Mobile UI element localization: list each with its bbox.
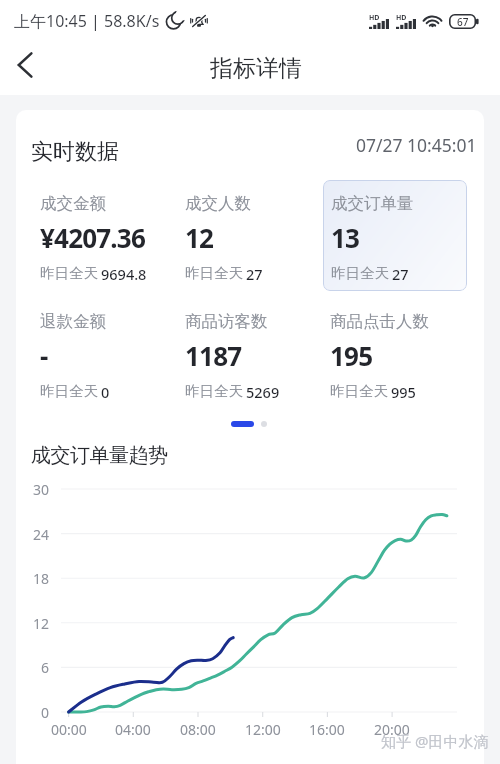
staticText: 12:00 xyxy=(245,720,281,739)
staticText: 成交人数 xyxy=(185,193,251,214)
staticText: 知乎 @田中水滴 xyxy=(381,731,489,751)
staticText: 昨日全天 xyxy=(185,264,243,282)
staticText: 指标详情 xyxy=(210,54,302,83)
button[interactable]: 返回 xyxy=(1,41,49,89)
staticText: 08:00 xyxy=(180,720,216,739)
button[interactable]: 成交订单量 xyxy=(323,180,467,291)
button[interactable]: 第一页 xyxy=(231,421,254,427)
staticText: 成交订单量 xyxy=(331,193,414,214)
staticText: HD xyxy=(396,13,407,23)
staticText: 昨日全天 xyxy=(40,382,98,400)
staticText: 商品访客数 xyxy=(185,311,268,332)
staticText: 07/27 10:45:01 xyxy=(356,133,477,157)
staticText: 0 xyxy=(101,382,110,402)
staticText: 昨日全天 xyxy=(40,264,98,282)
staticText: 18 xyxy=(33,569,50,588)
staticText: 商品点击人数 xyxy=(330,311,429,332)
staticText: 67 xyxy=(457,15,469,29)
staticText: 0 xyxy=(41,703,50,722)
staticText: 成交金额 xyxy=(40,193,106,214)
staticText: 5269 xyxy=(246,382,280,402)
staticText: 995 xyxy=(391,382,416,402)
staticText: 20:00 xyxy=(374,720,410,739)
staticText: - xyxy=(40,338,48,373)
staticText: 实时数据 xyxy=(31,138,119,166)
staticText: 9694.8 xyxy=(101,264,147,284)
staticText: 6 xyxy=(41,658,50,677)
staticText: 04:00 xyxy=(115,720,151,739)
staticText: 30 xyxy=(33,480,50,499)
staticText: 13 xyxy=(331,220,360,255)
button[interactable]: 成交金额 xyxy=(40,193,175,284)
button[interactable]: 第二页 xyxy=(261,421,267,427)
button[interactable]: 成交人数 xyxy=(185,193,320,284)
staticText: HD xyxy=(369,13,380,23)
staticText: 退款金额 xyxy=(40,311,106,332)
staticText: 27 xyxy=(246,264,263,284)
staticText: 12 xyxy=(33,614,50,633)
button[interactable]: 商品访客数 xyxy=(185,311,320,402)
staticText: 12 xyxy=(185,220,214,255)
button[interactable]: 退款金额 xyxy=(40,311,175,402)
button[interactable]: 商品点击人数 xyxy=(330,311,465,402)
staticText: 00:00 xyxy=(51,720,87,739)
staticText: ¥4207.36 xyxy=(40,220,146,255)
staticText: 24 xyxy=(33,525,50,544)
staticText: 1187 xyxy=(185,338,242,373)
staticText: 16:00 xyxy=(309,720,345,739)
staticText: 195 xyxy=(330,338,373,373)
staticText: 昨日全天 xyxy=(331,264,389,282)
staticText: 27 xyxy=(392,264,409,284)
staticText: 昨日全天 xyxy=(185,382,243,400)
staticText: 昨日全天 xyxy=(330,382,388,400)
staticText: 成交订单量趋势 xyxy=(31,443,168,468)
staticText: 上午10:45 | 58.8K/s xyxy=(14,10,160,32)
